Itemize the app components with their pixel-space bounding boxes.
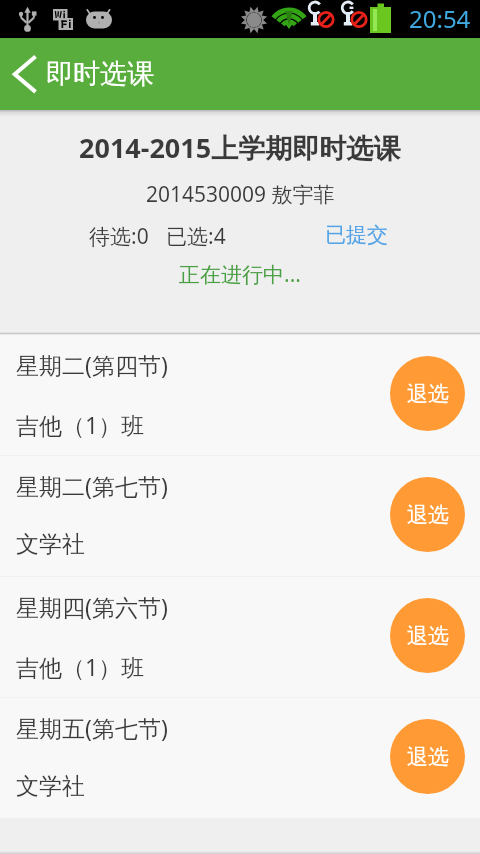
staticText: 文学社 bbox=[16, 530, 85, 559]
button[interactable]: 退选 bbox=[390, 356, 465, 431]
staticText: 已提交 bbox=[325, 222, 388, 248]
button[interactable]: 退选 bbox=[390, 719, 465, 794]
staticText: 星期二(第四节) bbox=[16, 349, 168, 380]
staticText: 2014530009 敖宇菲 bbox=[146, 180, 335, 209]
staticText: 星期五(第七节) bbox=[16, 712, 168, 743]
staticText: 即时选课 bbox=[46, 57, 154, 91]
button[interactable]: 星期二(第七节) bbox=[0, 456, 480, 576]
staticText: 正在进行中... bbox=[179, 260, 301, 289]
staticText: 退选 bbox=[407, 623, 449, 649]
button[interactable]: 星期四(第六节) bbox=[0, 577, 480, 697]
button[interactable]: Back bbox=[0, 38, 48, 110]
staticText: 退选 bbox=[407, 381, 449, 407]
staticText: 星期二(第七节) bbox=[16, 470, 168, 501]
staticText: 待选:0 bbox=[89, 222, 149, 251]
staticText: 吉他（1）班 bbox=[16, 651, 145, 682]
staticText: 退选 bbox=[407, 502, 449, 528]
button[interactable]: 退选 bbox=[390, 598, 465, 673]
staticText: 2014-2015上学期即时选课 bbox=[79, 129, 401, 166]
button[interactable]: 星期二(第四节) bbox=[0, 335, 480, 455]
button[interactable]: 星期五(第七节) bbox=[0, 698, 480, 818]
staticText: 吉他（1）班 bbox=[16, 409, 145, 440]
staticText: 20:54 bbox=[409, 2, 471, 35]
staticText: 文学社 bbox=[16, 772, 85, 801]
button[interactable]: 已提交 bbox=[325, 222, 388, 248]
button[interactable]: 退选 bbox=[390, 477, 465, 552]
staticText: 星期四(第六节) bbox=[16, 591, 168, 622]
staticText: 退选 bbox=[407, 744, 449, 770]
staticText: 已选:4 bbox=[166, 222, 226, 251]
